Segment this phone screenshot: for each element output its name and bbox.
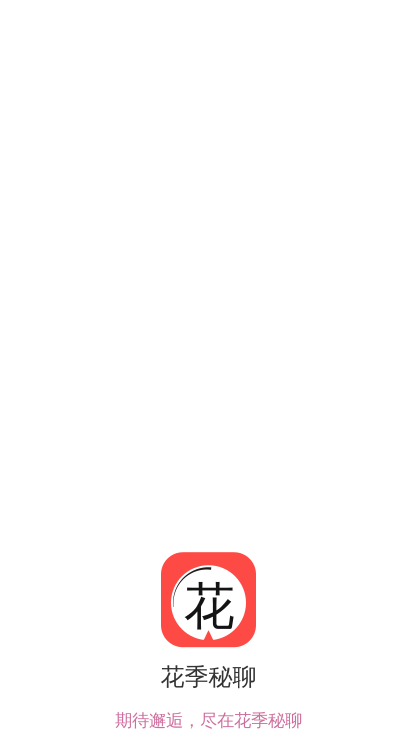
staticText: 花季秘聊 (160, 662, 256, 692)
staticText: 期待邂逅，尽在花季秘聊 (115, 710, 302, 731)
staticText: 花 (184, 576, 235, 638)
